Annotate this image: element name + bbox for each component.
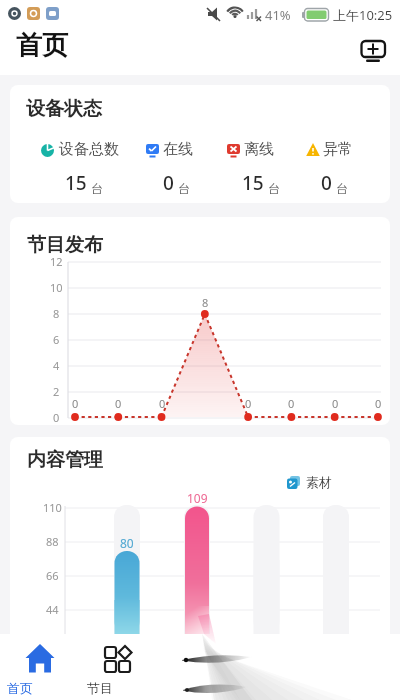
staticText: 15 — [65, 170, 87, 196]
staticText: 0 — [321, 170, 332, 196]
staticText: 109 — [187, 490, 208, 506]
staticText: 节目发布 — [27, 233, 103, 257]
staticText: 0 — [375, 396, 382, 411]
staticText: 44 — [46, 602, 59, 617]
staticText: 台 — [91, 181, 103, 196]
staticText: 台 — [268, 181, 280, 196]
staticText: 0 — [332, 396, 339, 411]
button[interactable] — [280, 470, 340, 492]
staticText: 设备总数 — [59, 140, 119, 159]
staticText: 台 — [336, 181, 348, 196]
button[interactable] — [160, 634, 240, 700]
staticText: 离线 — [244, 140, 274, 159]
button[interactable]: 节目 — [80, 634, 160, 700]
button[interactable]: 首页 — [0, 634, 80, 700]
staticText: 4 — [53, 358, 60, 373]
staticText: 0 — [163, 170, 174, 196]
staticText: 66 — [46, 568, 59, 583]
staticText: 0 — [53, 410, 60, 425]
staticText: 内容管理 — [27, 448, 103, 472]
staticText: 0 — [72, 396, 79, 411]
staticText: 80 — [120, 535, 134, 551]
staticText: 41% — [265, 6, 291, 24]
staticText: 0 — [288, 396, 295, 411]
staticText: 上午10:25 — [333, 6, 393, 24]
staticText: 0 — [115, 396, 122, 411]
staticText: 0 — [245, 396, 252, 411]
staticText: 异常 — [323, 140, 353, 159]
staticText: 节目 — [87, 680, 113, 696]
staticText: 8 — [202, 295, 209, 310]
staticText: 设备状态 — [26, 97, 102, 121]
staticText: 台 — [178, 181, 190, 196]
staticText: 110 — [43, 500, 62, 515]
staticText: 首页 — [16, 29, 68, 62]
button[interactable] — [352, 32, 394, 74]
staticText: 12 — [50, 254, 63, 269]
staticText: 88 — [46, 534, 59, 549]
staticText: 首页 — [7, 680, 33, 696]
staticText: 素材 — [306, 474, 332, 490]
staticText: 10 — [50, 280, 63, 295]
staticText: 2 — [53, 384, 60, 399]
staticText: 15 — [242, 170, 264, 196]
staticText: 6 — [53, 332, 60, 347]
staticText: 在线 — [163, 140, 193, 159]
staticText: 8 — [53, 306, 60, 321]
staticText: 0 — [159, 396, 166, 411]
